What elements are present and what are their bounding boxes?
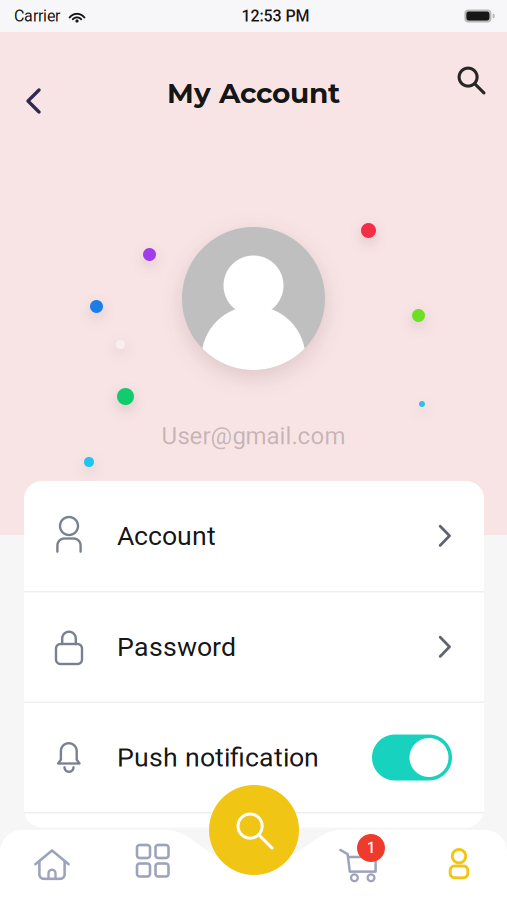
staticText: Push notification xyxy=(117,742,319,773)
staticText: Account xyxy=(117,520,216,552)
staticText: 12:53 PM xyxy=(241,7,309,25)
button[interactable]: Password xyxy=(24,592,484,701)
button[interactable]: Back xyxy=(10,78,56,124)
staticText: Carrier xyxy=(14,7,60,25)
button[interactable]: Categories xyxy=(125,833,180,888)
button[interactable]: Home xyxy=(22,837,82,892)
button[interactable]: Push notification xyxy=(24,703,484,812)
button[interactable]: Search xyxy=(448,57,494,103)
button[interactable]: Profile xyxy=(436,836,482,891)
button[interactable]: Search xyxy=(209,785,299,875)
staticText: 1 xyxy=(366,839,375,857)
staticText: User@gmail.com xyxy=(161,422,345,450)
button[interactable]: Account xyxy=(24,481,484,591)
staticText: Password xyxy=(117,631,236,663)
button[interactable]: Cart xyxy=(327,836,389,894)
staticText: My Account xyxy=(167,76,340,110)
